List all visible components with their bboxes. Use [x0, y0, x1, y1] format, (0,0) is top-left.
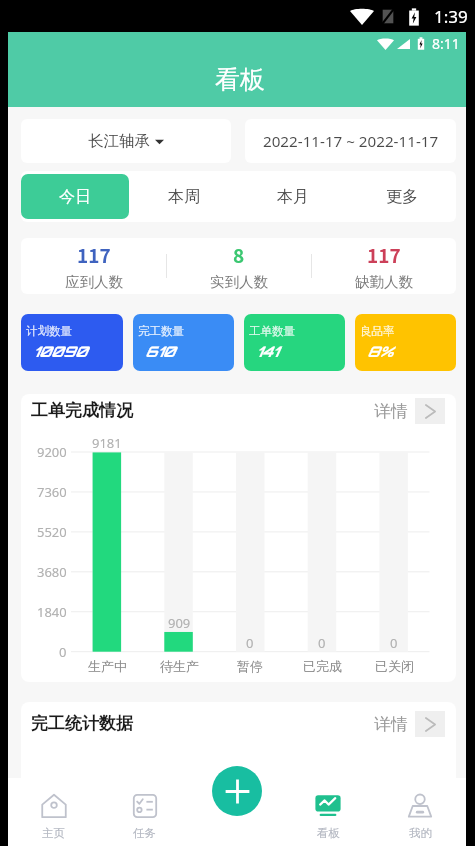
staticText: 实到人数 — [210, 273, 268, 291]
staticText: 缺勤人数 — [355, 273, 413, 291]
staticText: 已关闭 — [375, 658, 414, 674]
button[interactable]: Add — [212, 766, 262, 816]
staticText: 9181 — [92, 434, 122, 452]
staticText: 10090 — [33, 342, 87, 360]
staticText: 良品率 — [360, 324, 395, 338]
staticText: 生产中 — [88, 658, 127, 674]
staticText: 详情 — [374, 401, 408, 422]
staticText: 已完成 — [303, 658, 342, 674]
button[interactable]: 长江轴承 — [21, 119, 231, 163]
staticText: 详情 — [374, 714, 408, 735]
staticText: 任务 — [133, 826, 156, 840]
staticText: 看板 — [215, 64, 265, 95]
button[interactable]: 今日 — [21, 174, 129, 219]
staticText: 117 — [367, 241, 401, 269]
staticText: 工单数量 — [249, 324, 295, 338]
staticText: 2022-11-17 ~ 2022-11-17 — [263, 131, 439, 152]
button[interactable]: 主页 — [8, 778, 99, 846]
staticText: 9200 — [37, 443, 67, 461]
button[interactable]: 计划数量 — [21, 314, 123, 371]
staticText: 工单完成情况 — [31, 400, 133, 421]
button[interactable]: 2022-11-17 ~ 2022-11-17 — [245, 119, 456, 163]
staticText: 1:39 — [434, 5, 468, 28]
staticText: 1840 — [37, 603, 67, 621]
staticText: 8 — [233, 241, 245, 269]
staticText: 0 — [59, 643, 67, 661]
staticText: 主页 — [42, 826, 65, 840]
button[interactable]: 良品率 — [355, 314, 456, 371]
staticText: 0 — [246, 634, 254, 652]
button[interactable]: 详情 — [374, 711, 445, 737]
staticText: 我的 — [409, 826, 432, 840]
button[interactable]: 我的 — [374, 778, 466, 846]
staticText: 本月 — [277, 187, 309, 207]
staticText: 909 — [168, 614, 191, 632]
button[interactable]: 更多 — [347, 174, 456, 219]
button[interactable]: 117 — [21, 241, 166, 291]
staticText: 更多 — [386, 187, 418, 207]
staticText: 本周 — [168, 187, 200, 207]
button[interactable]: 本月 — [238, 174, 347, 219]
staticText: 8:11 — [432, 34, 460, 53]
button[interactable]: 工单数量 — [244, 314, 345, 371]
button[interactable]: 看板 — [282, 778, 374, 846]
staticText: 0 — [390, 634, 398, 652]
staticText: 141 — [256, 342, 278, 360]
staticText: 应到人数 — [65, 273, 123, 291]
staticText: 长江轴承 — [88, 131, 150, 151]
button[interactable]: 详情 — [374, 398, 445, 424]
button[interactable]: 完工数量 — [133, 314, 234, 371]
staticText: 610 — [145, 342, 175, 360]
staticText: 3680 — [37, 563, 67, 581]
button[interactable]: 8 — [167, 241, 311, 291]
staticText: 今日 — [59, 187, 91, 207]
staticText: 完工数量 — [138, 324, 184, 338]
staticText: 8% — [367, 342, 394, 360]
button[interactable]: 任务 — [99, 778, 190, 846]
button[interactable]: 117 — [312, 241, 456, 291]
staticText: 完工统计数据 — [31, 713, 133, 734]
staticText: 看板 — [317, 826, 340, 840]
staticText: 7360 — [37, 483, 67, 501]
staticText: 0 — [318, 634, 326, 652]
button[interactable]: 本周 — [129, 174, 238, 219]
staticText: 计划数量 — [26, 324, 72, 338]
staticText: 117 — [77, 241, 111, 269]
staticText: 待生产 — [160, 658, 199, 674]
staticText: 5520 — [37, 523, 67, 541]
staticText: 暂停 — [237, 658, 263, 674]
